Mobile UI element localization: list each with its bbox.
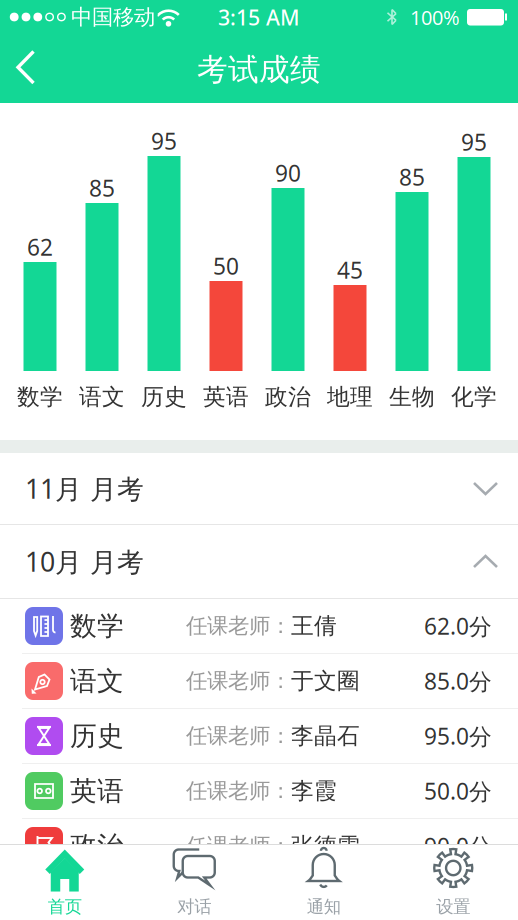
button[interactable]: 对话	[129, 845, 259, 920]
staticText: 10月 月考	[25, 544, 144, 579]
staticText: 90.0分	[424, 831, 492, 861]
staticText: 50.0分	[424, 776, 492, 806]
button[interactable]: 设置	[388, 845, 518, 920]
staticText: 85	[399, 162, 425, 192]
staticText: 85	[89, 173, 115, 203]
staticText: 90	[275, 158, 301, 188]
button[interactable]: 政治	[0, 819, 518, 873]
staticText: 张德雯	[291, 832, 360, 860]
staticText: 生物	[389, 383, 435, 411]
button[interactable]: 语文	[0, 654, 518, 708]
staticText: 45	[337, 255, 363, 285]
button[interactable]: 历史	[0, 709, 518, 763]
staticText: 100%	[410, 4, 460, 31]
staticText: 3:15 AM	[218, 3, 300, 31]
staticText: 95	[151, 126, 177, 156]
staticText: 11月 月考	[25, 471, 144, 506]
staticText: 任课老师：	[186, 668, 291, 694]
staticText: 李霞	[291, 777, 337, 805]
staticText: 数学	[70, 610, 124, 642]
staticText: 首页	[48, 896, 82, 917]
button[interactable]: Back	[0, 32, 60, 90]
staticText: 于文圈	[291, 667, 360, 695]
staticText: 62	[27, 232, 53, 262]
staticText: 李晶石	[291, 722, 360, 750]
staticText: 任课老师：	[186, 833, 291, 859]
staticText: 85.0分	[424, 666, 492, 696]
staticText: 考试成绩	[197, 51, 321, 89]
button[interactable]: 10月 月考	[0, 525, 518, 598]
staticText: 王倩	[291, 612, 337, 640]
staticText: 95	[461, 127, 487, 157]
staticText: 通知	[307, 896, 341, 917]
staticText: 任课老师：	[186, 613, 291, 639]
staticText: 中国移动	[71, 4, 155, 30]
button[interactable]: 通知	[259, 845, 388, 920]
button[interactable]: 首页	[0, 845, 129, 920]
button[interactable]: 11月 月考	[0, 453, 518, 524]
staticText: 地理	[327, 383, 373, 411]
staticText: 62.0分	[424, 611, 492, 641]
staticText: 95.0分	[424, 721, 492, 751]
staticText: 政治	[265, 383, 311, 411]
staticText: 语文	[70, 665, 124, 697]
staticText: 任课老师：	[186, 723, 291, 749]
staticText: 语文	[79, 383, 125, 411]
staticText: 英语	[203, 383, 249, 411]
staticText: 英语	[70, 775, 124, 807]
staticText: 化学	[451, 383, 497, 411]
button[interactable]: 数学	[0, 599, 518, 653]
staticText: 50	[213, 251, 239, 281]
button[interactable]: 英语	[0, 764, 518, 818]
staticText: 历史	[70, 720, 124, 752]
staticText: 数学	[17, 383, 63, 411]
staticText: 任课老师：	[186, 778, 291, 804]
staticText: 政治	[70, 830, 124, 862]
staticText: 对话	[177, 896, 211, 917]
staticText: 历史	[141, 383, 187, 411]
staticText: 设置	[436, 896, 470, 917]
